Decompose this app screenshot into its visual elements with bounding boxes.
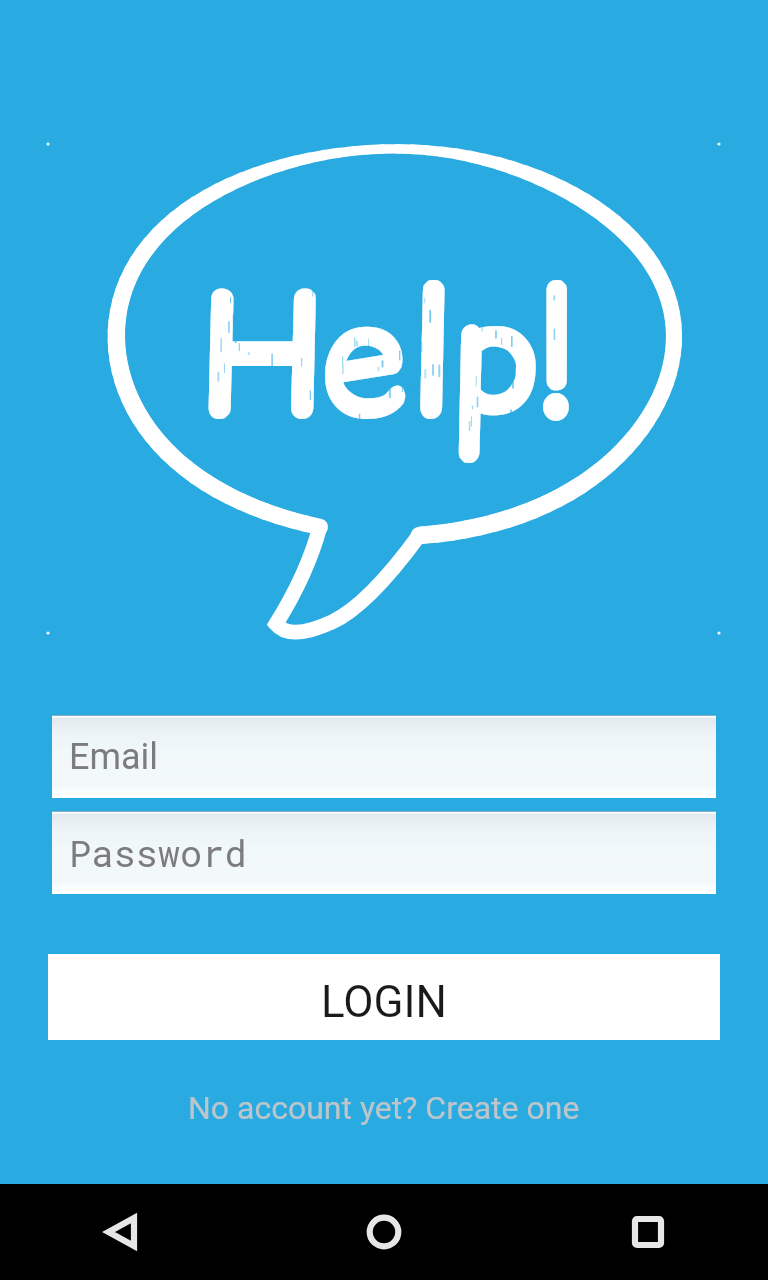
- staticText: LOGIN: [321, 976, 447, 1028]
- staticText: Help!: [200, 234, 576, 474]
- button[interactable]: Back: [73, 1184, 169, 1280]
- button[interactable]: Password: [52, 811, 716, 894]
- staticText: Email: [69, 736, 159, 778]
- button[interactable]: Recents: [600, 1184, 696, 1280]
- button[interactable]: LOGIN: [48, 954, 720, 1040]
- staticText: No account yet? Create one: [188, 1089, 580, 1127]
- button[interactable]: Email: [52, 715, 716, 798]
- button[interactable]: Home: [336, 1184, 432, 1280]
- button[interactable]: No account yet? Create one: [0, 1089, 768, 1127]
- staticText: Password: [69, 828, 247, 877]
